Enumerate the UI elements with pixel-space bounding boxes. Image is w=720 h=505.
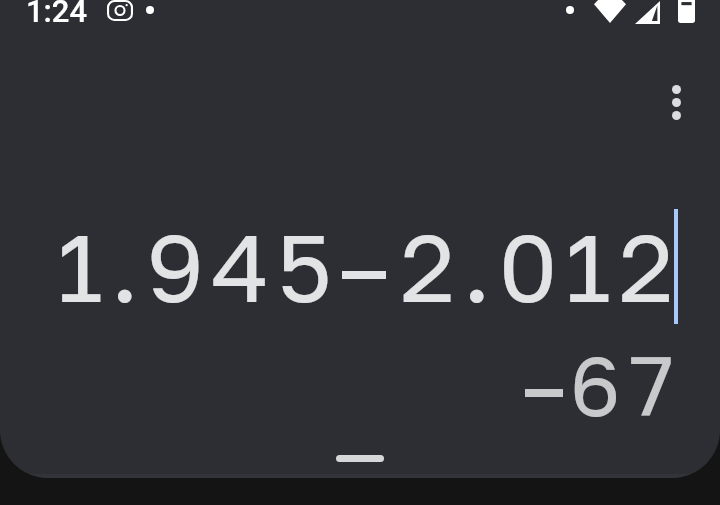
staticText: 2.012 bbox=[400, 209, 682, 323]
button[interactable]: Expression bbox=[0, 196, 720, 336]
staticText: 67 bbox=[569, 334, 683, 435]
staticText: 1.945 bbox=[57, 209, 340, 323]
staticText: 1:24 bbox=[26, 0, 88, 29]
button[interactable]: More options bbox=[652, 78, 700, 126]
button[interactable]: Expand keypad bbox=[324, 446, 396, 470]
